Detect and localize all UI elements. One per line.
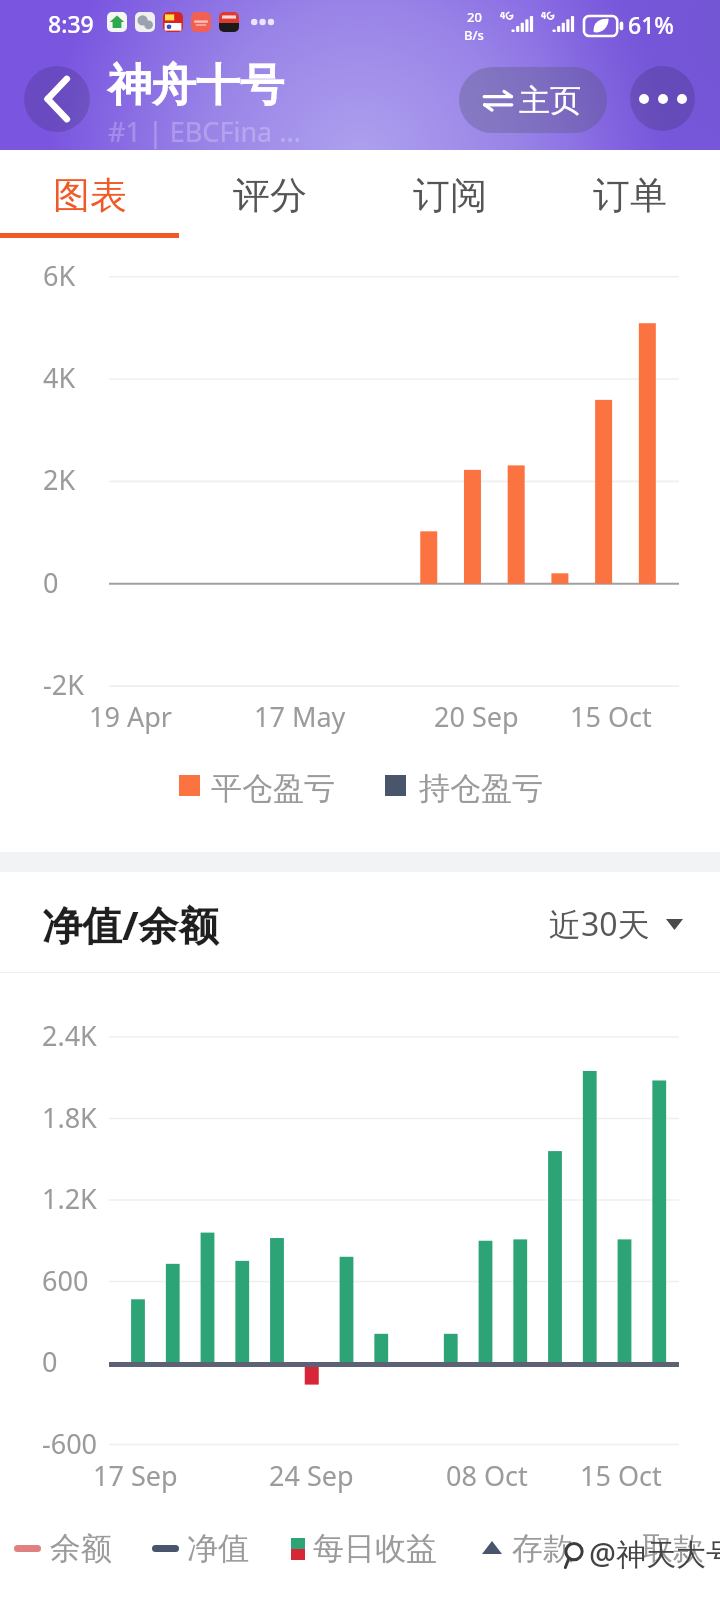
staticText: 平仓盈亏 bbox=[211, 769, 335, 808]
staticText: 15 Oct bbox=[570, 698, 652, 735]
staticText: 近30天 bbox=[549, 902, 650, 946]
button[interactable]: 订阅 bbox=[360, 150, 540, 238]
staticText: 订单 bbox=[593, 172, 667, 219]
staticText: 2.4K bbox=[42, 1017, 97, 1054]
staticText: 存款 bbox=[512, 1529, 574, 1568]
staticText: 0 bbox=[43, 564, 59, 601]
staticText: 20 bbox=[467, 8, 482, 26]
staticText: 4K bbox=[43, 359, 76, 396]
staticText: 6K bbox=[43, 257, 76, 294]
staticText: 19 Apr bbox=[89, 698, 172, 735]
staticText: -600 bbox=[42, 1425, 98, 1462]
button[interactable]: 评分 bbox=[180, 150, 360, 238]
staticText: 8:39 bbox=[48, 8, 94, 39]
staticText: 15 Oct bbox=[580, 1457, 662, 1494]
button[interactable]: More options bbox=[630, 66, 695, 131]
staticText: 17 Sep bbox=[93, 1457, 178, 1494]
button[interactable]: 图表 bbox=[0, 150, 180, 238]
staticText: 取款 bbox=[642, 1529, 704, 1568]
staticText: 20 Sep bbox=[434, 698, 519, 735]
staticText: 24 Sep bbox=[269, 1457, 354, 1494]
staticText: 余额 bbox=[50, 1529, 112, 1568]
button[interactable]: 近30天 bbox=[549, 902, 683, 946]
staticText: 净值 bbox=[187, 1529, 249, 1568]
staticText: 61% bbox=[628, 9, 674, 40]
button[interactable]: 主页 bbox=[459, 67, 607, 133]
staticText: 17 May bbox=[254, 698, 346, 735]
button[interactable]: Back bbox=[24, 66, 90, 132]
staticText: 净值/余额 bbox=[42, 897, 219, 952]
button[interactable]: 订单 bbox=[540, 150, 720, 238]
staticText: 图表 bbox=[53, 172, 127, 219]
staticText: 评分 bbox=[233, 172, 307, 219]
staticText: 1.2K bbox=[42, 1180, 97, 1217]
staticText: @神天大号 bbox=[589, 1533, 720, 1574]
staticText: B/s bbox=[464, 26, 484, 44]
staticText: 持仓盈亏 bbox=[419, 769, 543, 808]
staticText: 每日收益 bbox=[313, 1529, 437, 1568]
staticText: 600 bbox=[42, 1262, 89, 1299]
staticText: 主页 bbox=[519, 81, 581, 120]
staticText: 0 bbox=[42, 1343, 58, 1380]
staticText: 2K bbox=[43, 461, 76, 498]
staticText: 神舟十号 bbox=[108, 58, 284, 113]
staticText: 订阅 bbox=[413, 172, 487, 219]
staticText: 1.8K bbox=[42, 1099, 97, 1136]
staticText: -2K bbox=[43, 666, 84, 703]
staticText: 08 Oct bbox=[446, 1457, 528, 1494]
staticText: #1 | EBCFina ... bbox=[108, 113, 301, 150]
